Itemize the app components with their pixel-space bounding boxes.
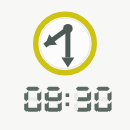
button[interactable] (0, 0, 130, 130)
button[interactable]: Alarm (0, 0, 130, 130)
